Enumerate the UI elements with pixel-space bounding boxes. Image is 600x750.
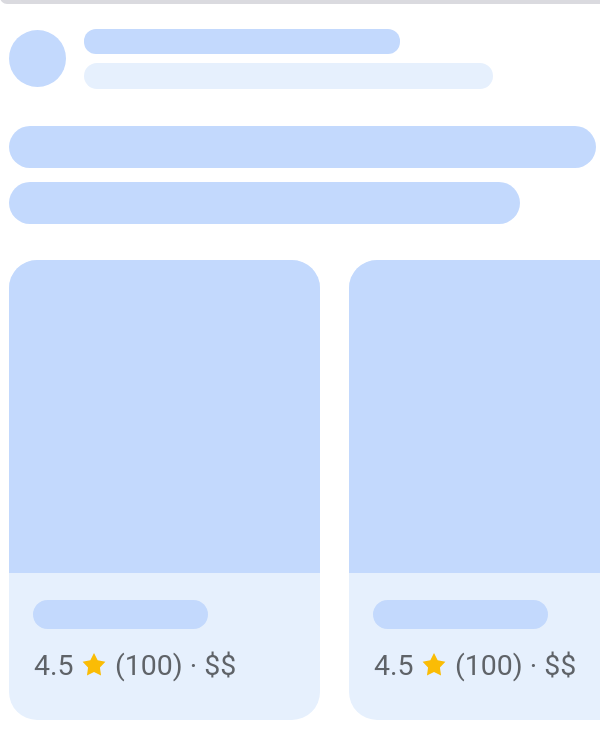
staticText: (100) · $$ — [455, 649, 577, 682]
other: Rating star — [82, 653, 106, 678]
staticText: 4.5 — [34, 649, 74, 682]
button[interactable]: Place card, rated 4.5 from 100 reviews — [349, 260, 600, 720]
staticText: 4.5 — [374, 649, 414, 682]
staticText: (100) · $$ — [115, 649, 237, 682]
button[interactable]: Profile — [9, 30, 66, 87]
button[interactable]: Place card, rated 4.5 from 100 reviews — [9, 260, 320, 720]
other: Rating star — [422, 653, 446, 678]
